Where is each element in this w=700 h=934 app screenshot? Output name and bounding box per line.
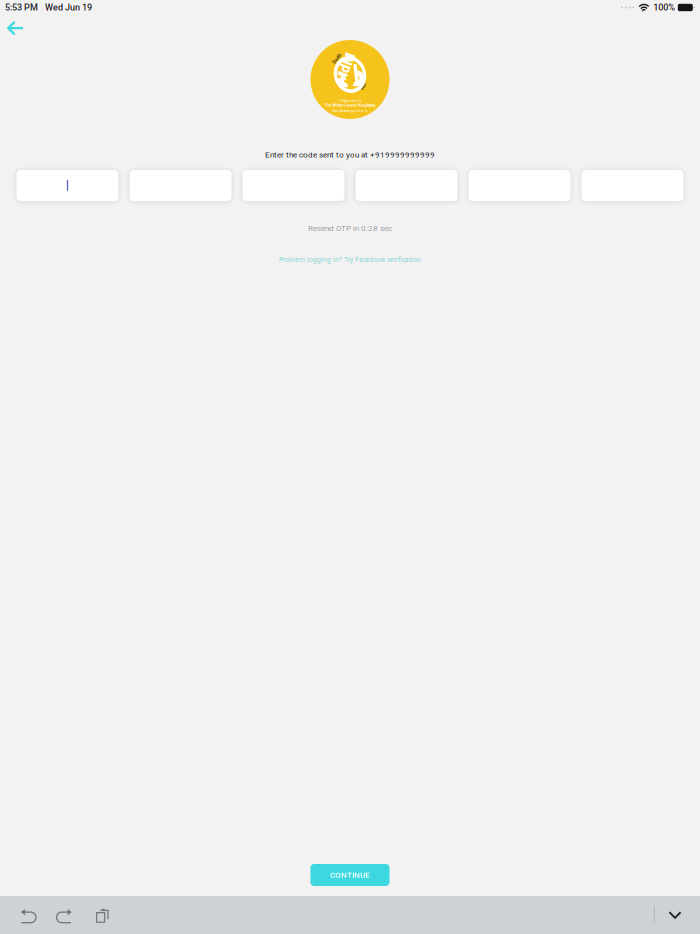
button[interactable]: OTP digit [581, 169, 684, 201]
staticText: Resend OTP in 0:28 sec [308, 223, 392, 233]
button[interactable]: Paste [84, 895, 121, 934]
staticText: The White Canvas Hospitality [324, 103, 375, 108]
button[interactable]: CONTINUE [310, 864, 389, 886]
button[interactable]: OTP digit [16, 169, 119, 201]
button[interactable]: Back [2, 15, 29, 40]
staticText: A Restaurant by [339, 99, 361, 103]
staticText: 5:53 PM [5, 2, 38, 13]
button[interactable]: Redo [47, 895, 84, 934]
staticText: bal [359, 84, 366, 89]
staticText: Wed Jun 19 [45, 2, 92, 13]
button[interactable]: Hide keyboard [662, 896, 688, 934]
staticText: CONTINUE [330, 870, 370, 880]
staticText: www.mdmmangalore.co.in [332, 109, 368, 113]
button[interactable]: OTP digit [355, 169, 458, 201]
staticText: MdM [331, 59, 363, 76]
staticText: Enter the code sent to you at +919999999… [265, 150, 435, 159]
button[interactable]: OTP digit [242, 169, 345, 201]
staticText: Sadh [331, 56, 343, 61]
staticText: 100% [653, 2, 675, 13]
staticText: Problem logging in? Try Facebook verific… [279, 256, 421, 264]
button[interactable]: Undo [10, 895, 47, 934]
button[interactable]: OTP digit [468, 169, 571, 201]
button[interactable]: Problem logging in? Try Facebook verific… [277, 254, 423, 266]
button[interactable]: OTP digit [129, 169, 232, 201]
